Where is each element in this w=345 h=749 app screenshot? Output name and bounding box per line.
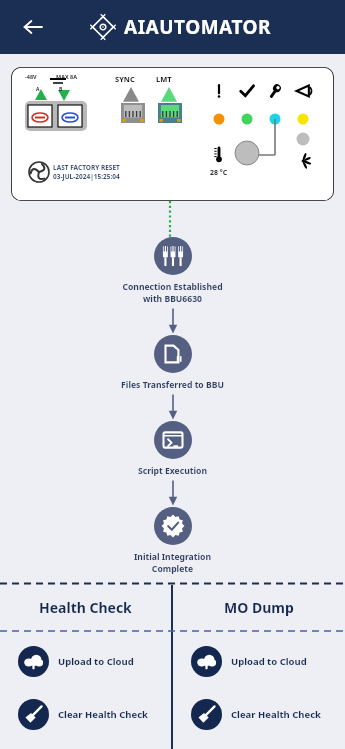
- button[interactable]: Clear Health Check: [191, 692, 345, 736]
- staticText: Health Check: [39, 598, 132, 617]
- button[interactable]: Step: [154, 507, 192, 545]
- staticText: Clear Health Check: [231, 708, 321, 721]
- staticText: Upload to Cloud: [231, 655, 307, 668]
- button[interactable]: Step: [154, 335, 192, 373]
- button[interactable]: Step: [154, 421, 192, 459]
- staticText: Files Transferred to BBU: [0, 379, 345, 391]
- staticText: MO Dump: [224, 598, 294, 617]
- staticText: Script Execution: [0, 465, 345, 477]
- staticText: Connection Established with BBU6630: [0, 281, 345, 305]
- staticText: LMT: [156, 74, 172, 84]
- staticText: AIAUTOMATOR: [124, 14, 271, 40]
- staticText: B: [59, 86, 63, 93]
- button[interactable]: Step: [154, 237, 192, 275]
- staticText: SYNC: [115, 74, 135, 84]
- staticText: Initial Integration Complete: [0, 551, 345, 575]
- button[interactable]: Back: [12, 6, 54, 48]
- staticText: Clear Health Check: [58, 708, 148, 721]
- staticText: 03-JUL-2024|15:25:04: [53, 172, 120, 181]
- staticText: A: [36, 86, 40, 93]
- button[interactable]: Upload to Cloud: [18, 639, 171, 683]
- staticText: Upload to Cloud: [58, 655, 134, 668]
- staticText: 28 °C: [210, 168, 228, 178]
- button[interactable]: Upload to Cloud: [191, 639, 345, 683]
- staticText: -48V: [25, 73, 37, 80]
- button[interactable]: Clear Health Check: [18, 692, 171, 736]
- staticText: MAX 8A: [56, 73, 78, 80]
- staticText: LAST FACTORY RESET: [53, 163, 120, 172]
